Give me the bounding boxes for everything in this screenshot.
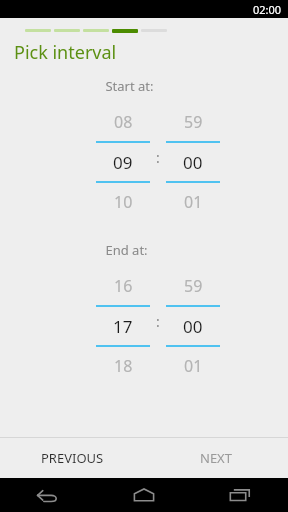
button[interactable]: Decrement to 01 <box>166 353 220 379</box>
staticText: 59 <box>184 275 203 297</box>
staticText: 08 <box>114 111 133 133</box>
staticText: NEXT <box>200 449 232 467</box>
button[interactable]: PREVIOUS <box>0 438 144 478</box>
staticText: : <box>156 312 160 331</box>
staticText: 01 <box>184 355 203 377</box>
staticText: Pick interval <box>14 40 117 65</box>
button[interactable]: Recent apps <box>192 478 288 512</box>
staticText: 59 <box>184 111 203 133</box>
button[interactable]: Selected value 00 <box>166 143 220 181</box>
staticText: Start at: <box>105 77 154 95</box>
button[interactable]: NEXT <box>144 438 288 478</box>
button[interactable]: Increment to 59 <box>166 273 220 299</box>
button[interactable]: Selected value 00 <box>166 307 220 345</box>
button[interactable]: Home <box>96 478 192 512</box>
staticText: 02:00 <box>253 2 282 17</box>
staticText: 10 <box>114 191 133 213</box>
staticText: 16 <box>114 275 133 297</box>
staticText: End at: <box>105 241 148 259</box>
button[interactable]: Decrement to 01 <box>166 189 220 215</box>
staticText: 00 <box>183 151 203 174</box>
staticText: 17 <box>113 315 133 338</box>
button[interactable]: Selected value 17 <box>96 307 150 345</box>
staticText: 09 <box>113 151 133 174</box>
staticText: 00 <box>183 315 203 338</box>
button[interactable]: Decrement to 18 <box>96 353 150 379</box>
button[interactable]: Increment to 16 <box>96 273 150 299</box>
button[interactable]: Increment to 59 <box>166 109 220 135</box>
staticText: 01 <box>184 191 203 213</box>
staticText: PREVIOUS <box>41 449 104 467</box>
button[interactable]: Selected value 09 <box>96 143 150 181</box>
staticText: 18 <box>114 355 133 377</box>
button[interactable]: Decrement to 10 <box>96 189 150 215</box>
staticText: : <box>156 148 160 167</box>
button[interactable]: Increment to 08 <box>96 109 150 135</box>
button[interactable]: Back <box>0 478 96 512</box>
